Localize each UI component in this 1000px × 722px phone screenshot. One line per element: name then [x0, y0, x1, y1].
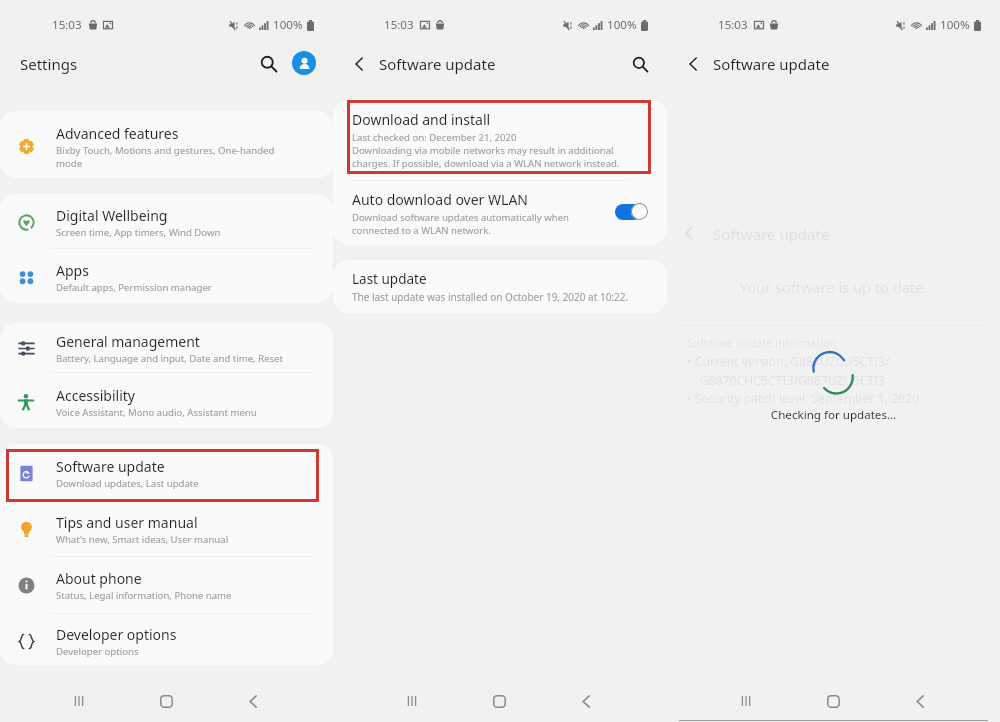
staticText: Screen time, App timers, Wind Down [56, 226, 221, 239]
staticText: • Current version: G887UZCU5CTI3/ G8870C… [687, 353, 890, 389]
button[interactable]: Back [231, 680, 275, 722]
button[interactable]: Auto download over WLAN toggle [611, 199, 648, 224]
button[interactable]: Account [292, 51, 316, 75]
button[interactable]: Auto download over WLAN [333, 181, 667, 245]
staticText: 100% [940, 17, 970, 33]
staticText: General management [56, 332, 200, 351]
button[interactable]: Search [253, 48, 284, 79]
staticText: Auto download over WLAN [352, 190, 528, 209]
staticText: Default apps, Permission manager [56, 281, 212, 294]
staticText: Software update [379, 54, 496, 74]
button[interactable]: Home [811, 680, 855, 722]
button[interactable]: Advanced features [0, 113, 333, 178]
staticText: Your software is up to date. [667, 277, 1000, 297]
button[interactable]: About phone [0, 558, 333, 613]
button[interactable]: Back [344, 49, 374, 79]
staticText: Accessibility [56, 386, 135, 405]
button[interactable]: Digital Wellbeing [0, 195, 333, 250]
staticText: Software update information [687, 335, 837, 350]
button[interactable]: Download and install [333, 99, 667, 180]
staticText: Tips and user manual [56, 513, 198, 532]
staticText: Status, Legal information, Phone name [56, 589, 232, 602]
staticText: Checking for updates… [667, 407, 1000, 423]
button[interactable]: Home [477, 680, 521, 722]
button[interactable]: Back [678, 49, 708, 79]
staticText: Last update [352, 270, 427, 288]
staticText: About phone [56, 569, 142, 588]
staticText: Download software updates automatically … [352, 211, 569, 237]
staticText: 15:03 [718, 17, 748, 33]
staticText: Apps [56, 261, 89, 280]
staticText: Software update [713, 224, 830, 244]
button[interactable]: Home [144, 680, 188, 722]
button[interactable]: Developer options [0, 614, 333, 665]
staticText: Developer options [56, 625, 177, 644]
staticText: Software update [713, 54, 830, 74]
button[interactable]: Last update [333, 260, 667, 313]
button[interactable]: Tips and user manual [0, 502, 333, 557]
staticText: Advanced features [56, 124, 179, 143]
staticText: Developer options [56, 645, 139, 658]
staticText: Voice Assistant, Mono audio, Assistant m… [56, 406, 257, 419]
staticText: Download and install [352, 110, 491, 129]
staticText: The last update was installed on October… [352, 290, 629, 304]
button[interactable]: Accessibility [0, 375, 333, 428]
button[interactable]: Software update [0, 446, 333, 501]
staticText: 15:03 [384, 17, 414, 33]
staticText: Last checked on: December 21, 2020 Downl… [352, 131, 620, 170]
staticText: Battery, Language and input, Date and ti… [56, 352, 284, 365]
button[interactable]: Search [625, 49, 655, 79]
staticText: 100% [607, 17, 637, 33]
staticText: Bixby Touch, Motions and gestures, One-h… [56, 144, 275, 170]
staticText: Software update [56, 457, 165, 476]
button[interactable]: Back [898, 680, 942, 722]
staticText: • Security patch level: September 1, 202… [687, 390, 919, 407]
staticText: 15:03 [52, 17, 82, 33]
button[interactable]: Recents [57, 680, 101, 722]
button[interactable]: Recents [724, 680, 768, 722]
button[interactable]: General management [0, 323, 333, 376]
button[interactable]: Back [564, 680, 608, 722]
staticText: Digital Wellbeing [56, 206, 168, 225]
staticText: 100% [273, 17, 303, 33]
staticText: What's new, Smart ideas, User manual [56, 533, 229, 546]
staticText: Settings [20, 54, 78, 74]
button[interactable]: Recents [390, 680, 434, 722]
button[interactable]: Apps [0, 250, 333, 303]
staticText: Download updates, Last update [56, 477, 199, 490]
